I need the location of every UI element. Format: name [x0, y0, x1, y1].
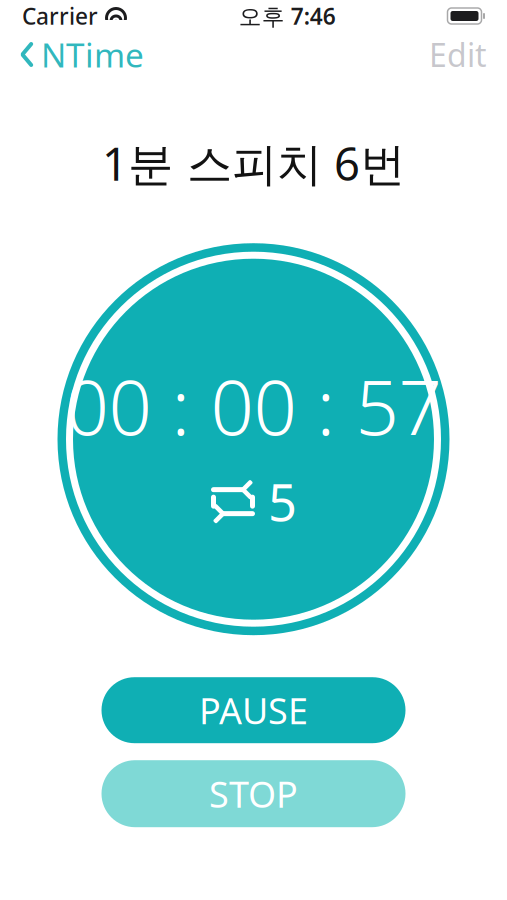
- staticText: 1분 스피치 6번: [102, 133, 405, 193]
- button[interactable]: NTime: [0, 26, 154, 83]
- staticText: 00 : 00 : 57: [65, 355, 441, 456]
- button[interactable]: PAUSE: [101, 677, 405, 743]
- staticText: 오후 7:46: [239, 1, 336, 31]
- staticText: Edit: [429, 33, 487, 76]
- staticText: STOP: [209, 770, 298, 818]
- staticText: Carrier: [22, 1, 98, 31]
- button[interactable]: STOP: [101, 760, 405, 827]
- button[interactable]: Edit: [409, 27, 507, 82]
- staticText: PAUSE: [199, 686, 308, 734]
- staticText: 5: [268, 468, 297, 535]
- staticText: NTime: [41, 32, 144, 77]
